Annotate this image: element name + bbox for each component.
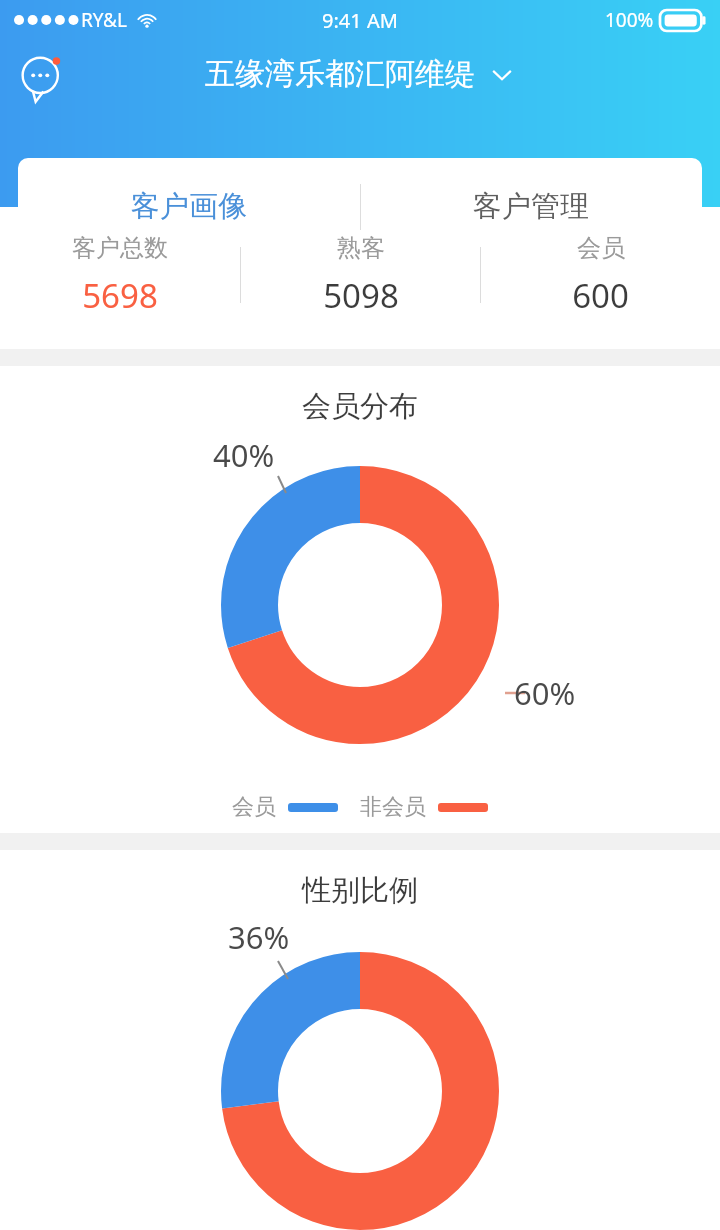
staticText: 五缘湾乐都汇阿维缇 bbox=[205, 55, 475, 93]
staticText: 60% bbox=[514, 672, 576, 714]
staticText: RY&L bbox=[81, 7, 127, 33]
button[interactable]: Messages bbox=[16, 52, 68, 104]
staticText: 客户画像 bbox=[131, 188, 247, 225]
staticText: 600 bbox=[572, 273, 629, 318]
button[interactable]: 会员 bbox=[481, 233, 720, 318]
staticText: 100% bbox=[605, 7, 654, 33]
staticText: 会员 bbox=[232, 793, 276, 821]
staticText: 熟客 bbox=[337, 233, 385, 263]
button[interactable]: 客户画像 bbox=[18, 158, 360, 255]
staticText: 非会员 bbox=[360, 793, 426, 821]
staticText: 5098 bbox=[323, 273, 399, 318]
staticText: 会员分布 bbox=[0, 388, 720, 425]
staticText: 会员 bbox=[577, 233, 625, 263]
button[interactable]: 熟客 bbox=[241, 233, 480, 318]
staticText: 客户管理 bbox=[473, 188, 589, 225]
button[interactable]: 五缘湾乐都汇阿维缇 bbox=[205, 55, 515, 93]
staticText: 5698 bbox=[82, 273, 158, 318]
staticText: 36% bbox=[228, 916, 290, 958]
staticText: 性别比例 bbox=[0, 872, 720, 909]
button[interactable]: 客户总数 bbox=[0, 233, 240, 318]
staticText: 9:41 AM bbox=[322, 7, 398, 34]
staticText: 客户总数 bbox=[72, 233, 168, 263]
button[interactable]: 客户管理 bbox=[360, 158, 702, 255]
staticText: 40% bbox=[213, 434, 275, 476]
